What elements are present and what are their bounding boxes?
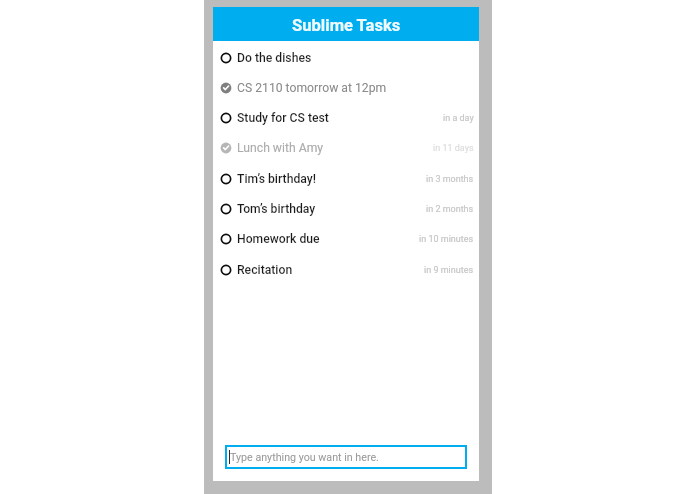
- button[interactable]: Mark Tim’s birthday! done: [213, 164, 479, 194]
- button[interactable]: Mark Homework due done: [220, 233, 232, 245]
- button[interactable]: Mark Tim’s birthday! done: [220, 173, 232, 185]
- button[interactable]: Mark Do the dishes done: [220, 52, 232, 64]
- staticText: in 3 months: [426, 174, 474, 185]
- button[interactable]: Mark Study for CS test done: [213, 103, 479, 133]
- staticText: Lunch with Amy: [237, 141, 324, 155]
- button[interactable]: Mark Do the dishes done: [213, 43, 479, 73]
- staticText: Sublime Tasks: [292, 16, 401, 35]
- button[interactable]: Mark Lunch with Amy not done: [220, 142, 232, 154]
- staticText: Type anything you want in here.: [230, 451, 379, 464]
- button[interactable]: Mark Recitation done: [213, 255, 479, 285]
- button[interactable]: Type anything you want in here.: [225, 445, 467, 469]
- staticText: Do the dishes: [237, 51, 312, 65]
- staticText: Tom’s birthday: [237, 202, 316, 216]
- staticText: Tim’s birthday!: [237, 172, 316, 186]
- staticText: in 10 minutes: [419, 234, 474, 245]
- button[interactable]: Sublime Tasks: [213, 7, 479, 41]
- staticText: Homework due: [237, 232, 320, 246]
- button[interactable]: Mark Tom’s birthday done: [220, 203, 232, 215]
- button[interactable]: Mark CS 2110 tomorrow at 12pm not done: [213, 73, 479, 103]
- staticText: in a day: [443, 113, 474, 124]
- button[interactable]: Mark Lunch with Amy not done: [213, 133, 479, 163]
- button[interactable]: Mark Tom’s birthday done: [213, 194, 479, 224]
- staticText: Recitation: [237, 263, 293, 277]
- staticText: in 2 months: [426, 204, 474, 215]
- staticText: in 11 days: [433, 143, 474, 154]
- button[interactable]: Mark Recitation done: [220, 264, 232, 276]
- staticText: CS 2110 tomorrow at 12pm: [237, 81, 387, 95]
- staticText: Study for CS test: [237, 111, 329, 125]
- staticText: in 9 minutes: [424, 265, 474, 276]
- button[interactable]: Mark Study for CS test done: [220, 112, 232, 124]
- button[interactable]: Mark Homework due done: [213, 224, 479, 254]
- button[interactable]: Mark CS 2110 tomorrow at 12pm not done: [220, 82, 232, 94]
